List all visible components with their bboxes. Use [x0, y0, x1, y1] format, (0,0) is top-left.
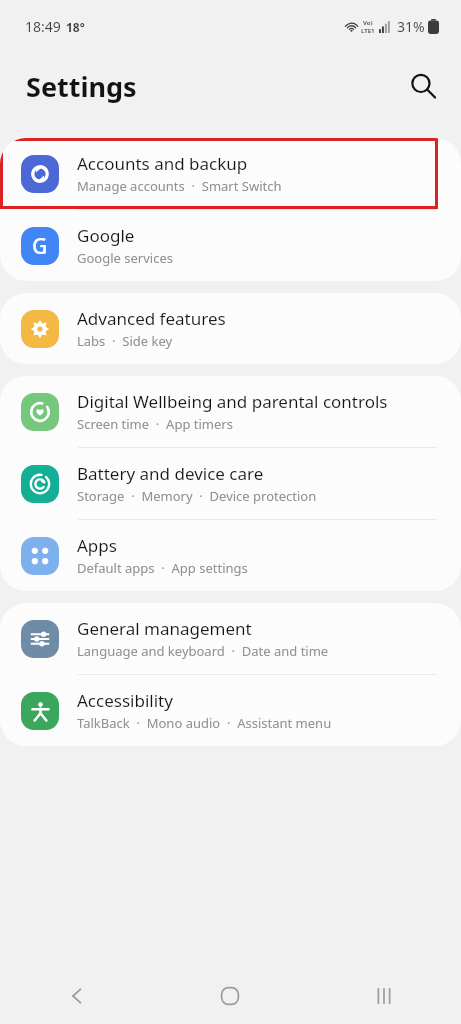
staticText: Battery and device care	[77, 462, 264, 485]
staticText: Google services	[77, 249, 173, 267]
staticText: Apps	[77, 534, 117, 557]
button[interactable]: G	[0, 210, 461, 281]
button[interactable]: Back	[49, 968, 105, 1024]
button[interactable]: Accounts and backup	[0, 138, 461, 209]
staticText: TalkBack · Mono audio · Assistant menu	[77, 714, 332, 732]
button[interactable]: General management	[0, 603, 461, 674]
button[interactable]: Advanced features	[0, 293, 461, 364]
staticText: Digital Wellbeing and parental controls	[77, 390, 388, 413]
staticText: LTE1	[361, 27, 375, 35]
staticText: Language and keyboard · Date and time	[77, 642, 329, 660]
button[interactable]: Search	[399, 62, 447, 110]
staticText: Default apps · App settings	[77, 559, 248, 577]
staticText: Accounts and backup	[77, 152, 248, 175]
staticText: Manage accounts · Smart Switch	[77, 177, 282, 195]
staticText: G	[32, 232, 48, 261]
staticText: Google	[77, 224, 135, 247]
staticText: Accessibility	[77, 689, 173, 712]
staticText: 18:49	[25, 17, 61, 36]
button[interactable]: Accessibility	[0, 675, 461, 746]
button[interactable]: Recent apps	[356, 968, 412, 1024]
button[interactable]: Battery and device care	[0, 448, 461, 519]
staticText: Settings	[26, 68, 137, 105]
staticText: Labs · Side key	[77, 332, 173, 350]
button[interactable]: Digital Wellbeing and parental controls	[0, 376, 461, 447]
staticText: General management	[77, 617, 252, 640]
staticText: Vo)	[363, 19, 373, 27]
button[interactable]: Home	[202, 968, 258, 1024]
staticText: Storage · Memory · Device protection	[77, 487, 317, 505]
staticText: Advanced features	[77, 307, 226, 330]
staticText: Screen time · App timers	[77, 415, 233, 433]
staticText: 18°	[66, 19, 85, 35]
button[interactable]: Apps	[0, 520, 461, 591]
staticText: 31%	[397, 17, 425, 36]
